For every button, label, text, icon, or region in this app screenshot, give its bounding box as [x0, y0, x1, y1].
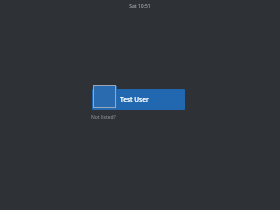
button[interactable]: Test User	[92, 89, 185, 110]
button[interactable]: Test User avatar	[93, 85, 116, 108]
staticText: Sat 10:51	[129, 3, 151, 10]
staticText: Not listed?	[91, 114, 116, 121]
button[interactable]: Not listed?	[91, 114, 116, 121]
staticText: Test User	[120, 95, 149, 104]
